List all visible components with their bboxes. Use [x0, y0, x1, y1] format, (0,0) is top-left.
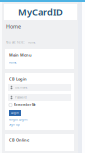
staticText: Main Menu [9, 52, 32, 58]
staticText: Login [11, 111, 19, 115]
staticText: Sign up [9, 123, 20, 126]
staticText: Home [9, 61, 17, 64]
staticText: Home [6, 23, 21, 30]
staticText: You are here: [6, 41, 25, 44]
button[interactable]: Forgot Login? [9, 118, 28, 121]
staticText: Username [15, 86, 28, 89]
button[interactable]: Home [5, 57, 72, 69]
button[interactable]: Sign up [9, 123, 20, 126]
button[interactable]: Login [9, 110, 21, 116]
staticText: CB Online [9, 137, 29, 143]
staticText: Home [28, 41, 36, 44]
staticText: Remember Me [14, 103, 36, 107]
staticText: Password [15, 96, 27, 99]
staticText: Forgot Login? [9, 118, 28, 121]
staticText: MyCardID [18, 6, 63, 18]
staticText: CB Login [9, 76, 27, 82]
